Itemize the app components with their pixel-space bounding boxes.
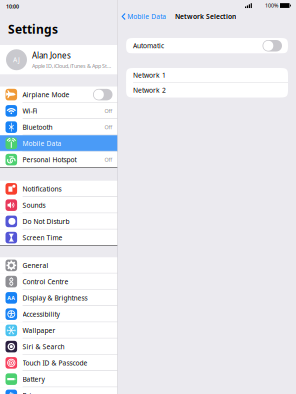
button[interactable]: Automatic — [126, 38, 288, 53]
staticText: Control Centre — [23, 277, 69, 286]
button[interactable]: Network 1 — [126, 68, 288, 82]
button[interactable]: Bluetooth — [0, 119, 117, 135]
button[interactable]: Airplane Mode — [0, 86, 117, 103]
staticText: Privacy — [23, 391, 45, 394]
button[interactable]: Wi-Fi — [0, 103, 117, 119]
staticText: Sounds — [23, 201, 46, 210]
button[interactable]: Sounds — [0, 197, 117, 213]
staticText: AJ — [13, 55, 20, 64]
staticText: Screen Time — [23, 233, 63, 242]
button[interactable]: Wallpaper — [0, 322, 117, 338]
staticText: AA — [7, 294, 15, 301]
button[interactable]: AJ — [0, 45, 117, 74]
staticText: Bluetooth — [23, 123, 53, 132]
staticText: Mobile Data — [23, 139, 62, 148]
staticText: Wallpaper — [23, 326, 56, 335]
staticText: Mobile Data — [127, 12, 166, 21]
staticText: Off — [104, 124, 112, 131]
button[interactable]: Do Not Disturb — [0, 213, 117, 229]
staticText: Network 1 — [133, 71, 166, 80]
staticText: Accessibility — [23, 310, 60, 319]
button[interactable]: Screen Time — [0, 229, 117, 246]
button[interactable]: Battery — [0, 371, 117, 387]
staticText: Display & Brightness — [23, 293, 88, 302]
staticText: Touch ID & Passcode — [23, 358, 88, 367]
staticText: Network Selection — [175, 12, 236, 21]
staticText: Notifications — [23, 184, 62, 193]
button[interactable]: Accessibility — [0, 306, 117, 322]
staticText: Off — [104, 107, 112, 114]
staticText: General — [23, 261, 49, 270]
button[interactable]: Mobile Data — [0, 135, 117, 151]
staticText: Siri & Search — [23, 342, 65, 351]
staticText: Personal Hotspot — [23, 155, 77, 164]
button[interactable]: Siri & Search — [0, 338, 117, 355]
button[interactable]: General — [0, 257, 117, 273]
staticText: Wi-Fi — [23, 106, 38, 115]
button[interactable]: Personal Hotspot — [0, 151, 117, 168]
staticText: Alan Jones — [32, 50, 71, 61]
staticText: Off — [104, 156, 112, 163]
button[interactable]: Network 2 — [126, 83, 288, 97]
button[interactable]: Touch ID & Passcode — [0, 355, 117, 371]
staticText: Network 2 — [133, 86, 166, 95]
staticText: Battery — [23, 375, 45, 384]
staticText: Do Not Disturb — [23, 217, 70, 226]
button[interactable]: Mobile Data — [119, 10, 168, 23]
staticText: 10:00 — [6, 3, 19, 10]
staticText: Automatic — [133, 41, 164, 50]
staticText: Apple ID, iCloud, iTunes & App St… — [32, 62, 111, 69]
button[interactable]: Privacy — [0, 387, 117, 394]
button[interactable]: Control Centre — [0, 273, 117, 290]
staticText: Airplane Mode — [23, 90, 70, 99]
button[interactable]: Notifications — [0, 181, 117, 197]
button[interactable]: AA — [0, 290, 117, 306]
staticText: Settings — [8, 21, 58, 37]
staticText: 100% — [265, 2, 278, 9]
